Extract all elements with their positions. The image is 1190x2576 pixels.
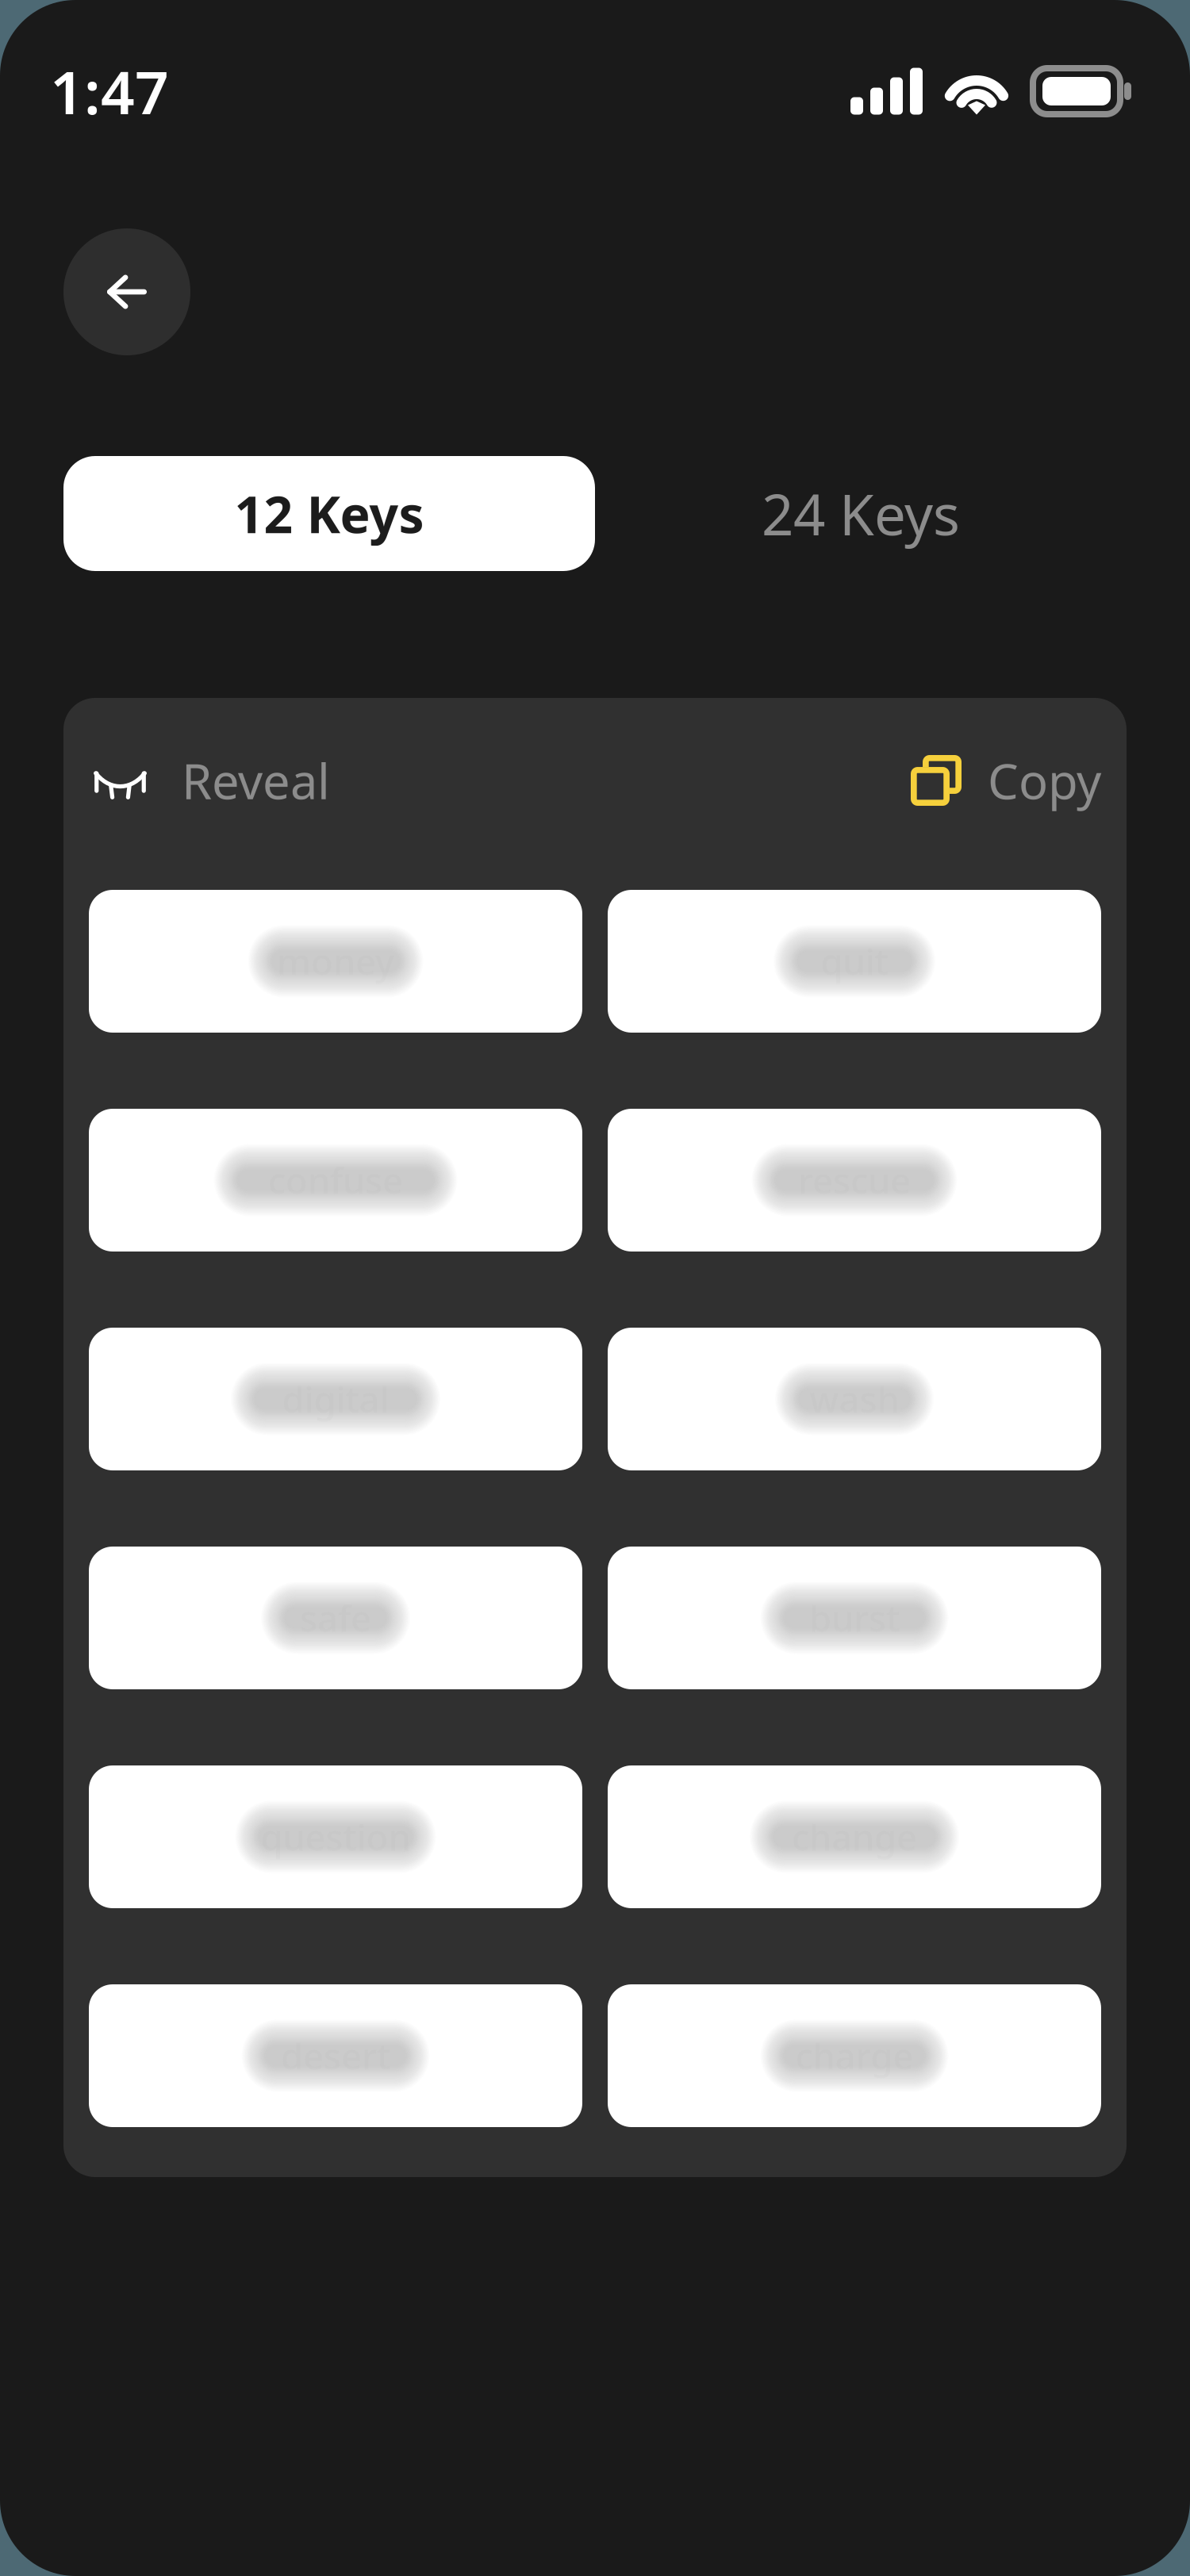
button[interactable]: wash: [608, 1328, 1101, 1470]
button[interactable]: confuse: [89, 1109, 582, 1252]
staticText: 24 Keys: [762, 476, 960, 551]
button[interactable]: money: [89, 890, 582, 1033]
button[interactable]: safe: [89, 1547, 582, 1689]
staticText: desert: [281, 2032, 390, 2080]
staticText: quit: [821, 937, 888, 985]
staticText: charge: [795, 2032, 914, 2080]
button[interactable]: quit: [608, 890, 1101, 1033]
staticText: safe: [300, 1594, 371, 1642]
staticText: question: [261, 1813, 411, 1861]
button[interactable]: change: [608, 1765, 1101, 1908]
staticText: rescue: [798, 1156, 911, 1204]
staticText: Copy: [988, 748, 1101, 813]
button[interactable]: Copy: [911, 748, 1101, 813]
button[interactable]: question: [89, 1765, 582, 1908]
button[interactable]: rescue: [608, 1109, 1101, 1252]
staticText: 1:47: [50, 52, 169, 131]
staticText: Reveal: [182, 748, 330, 813]
button[interactable]: 24 Keys: [595, 456, 1127, 571]
button[interactable]: digital: [89, 1328, 582, 1470]
staticText: money: [277, 937, 394, 985]
staticText: burst: [809, 1594, 900, 1642]
button[interactable]: Back: [63, 228, 190, 355]
staticText: wash: [810, 1375, 899, 1423]
staticText: change: [792, 1813, 917, 1861]
staticText: digital: [282, 1375, 389, 1423]
button[interactable]: charge: [608, 1984, 1101, 2127]
button[interactable]: 12 Keys: [63, 456, 595, 571]
button[interactable]: Reveal: [94, 748, 330, 813]
staticText: confuse: [268, 1156, 403, 1204]
staticText: 12 Keys: [234, 480, 424, 547]
button[interactable]: burst: [608, 1547, 1101, 1689]
button[interactable]: desert: [89, 1984, 582, 2127]
